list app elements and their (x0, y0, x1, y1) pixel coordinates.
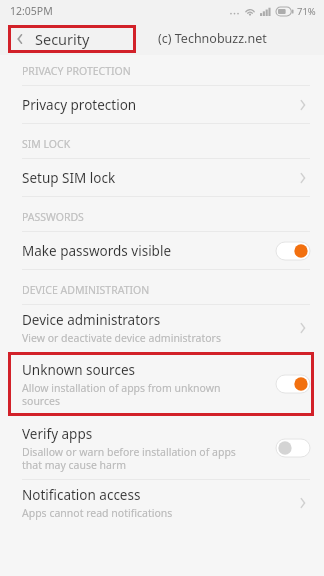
staticText: Allow installation of apps from unknown … (22, 381, 221, 408)
staticText: Notification access (22, 486, 141, 504)
staticText: Device administrators (22, 311, 161, 329)
staticText: 71% (297, 5, 316, 18)
button[interactable]: Privacy protection (0, 86, 324, 123)
staticText: PASSWORDS (22, 210, 84, 224)
other: Open (294, 319, 312, 337)
staticText: Disallow or warn before installation of … (22, 445, 236, 472)
button[interactable]: Setup SIM lock (0, 159, 324, 196)
staticText: Make passwords visible (22, 242, 172, 260)
button[interactable]: Switch on (276, 242, 310, 260)
button[interactable]: Verify apps (0, 417, 324, 479)
other: Open (294, 169, 312, 187)
staticText: Unknown sources (22, 361, 135, 379)
button[interactable]: Switch on (276, 375, 310, 393)
button[interactable]: Unknown sources (0, 351, 324, 417)
staticText: SIM LOCK (22, 137, 71, 151)
staticText: Verify apps (22, 425, 93, 443)
other: Open (294, 494, 312, 512)
staticText: Apps cannot read notifications (22, 506, 173, 520)
button[interactable]: Switch off (276, 439, 310, 457)
staticText: View or deactivate device administrators (22, 331, 221, 345)
staticText: Privacy protection (22, 96, 137, 114)
staticText: Setup SIM lock (22, 169, 116, 187)
button[interactable]: Make passwords visible (0, 232, 324, 269)
button[interactable]: Back (12, 29, 90, 49)
staticText: DEVICE ADMINISTRATION (22, 283, 150, 297)
button[interactable]: Notification access (0, 480, 324, 526)
other: Open (294, 96, 312, 114)
staticText: PRIVACY PROTECTION (22, 64, 131, 78)
staticText: 12:05PM (10, 4, 53, 18)
button[interactable]: Device administrators (0, 305, 324, 351)
staticText: (c) Technobuzz.net (158, 30, 267, 47)
staticText: Security (35, 29, 90, 49)
